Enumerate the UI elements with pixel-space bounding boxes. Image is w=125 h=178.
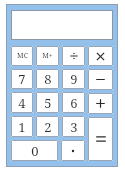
staticText: 4 bbox=[18, 94, 26, 112]
button[interactable]: Decimal point bbox=[61, 140, 85, 161]
button[interactable]: MC bbox=[11, 46, 33, 66]
button[interactable]: 8 bbox=[36, 69, 59, 89]
staticText: 0 bbox=[31, 142, 39, 160]
staticText: 5 bbox=[44, 94, 52, 112]
staticText: 2 bbox=[44, 118, 52, 136]
staticText: 7 bbox=[18, 70, 26, 88]
staticText: MC bbox=[17, 51, 28, 61]
button[interactable]: Divide bbox=[62, 46, 85, 66]
button[interactable]: 7 bbox=[11, 69, 33, 89]
button[interactable]: 0 bbox=[11, 140, 58, 161]
button[interactable]: Minus bbox=[88, 69, 113, 90]
button[interactable]: 6 bbox=[62, 92, 85, 113]
staticText: 6 bbox=[70, 94, 78, 112]
staticText: 9 bbox=[70, 70, 78, 88]
button[interactable]: Equals bbox=[88, 117, 113, 161]
button[interactable]: 3 bbox=[62, 116, 85, 137]
staticText: 8 bbox=[44, 70, 52, 88]
staticText: 1 bbox=[18, 118, 26, 136]
button[interactable]: Plus bbox=[88, 93, 113, 114]
button[interactable] bbox=[11, 10, 113, 40]
button[interactable]: 2 bbox=[36, 116, 59, 137]
button[interactable]: 4 bbox=[11, 92, 33, 113]
staticText: M+ bbox=[42, 51, 53, 61]
button[interactable]: M+ bbox=[36, 46, 59, 66]
button[interactable]: 9 bbox=[62, 69, 85, 89]
staticText: 3 bbox=[70, 118, 78, 136]
button[interactable]: 5 bbox=[36, 92, 59, 113]
button[interactable]: Clear bbox=[88, 46, 113, 66]
button[interactable]: 1 bbox=[11, 116, 33, 137]
